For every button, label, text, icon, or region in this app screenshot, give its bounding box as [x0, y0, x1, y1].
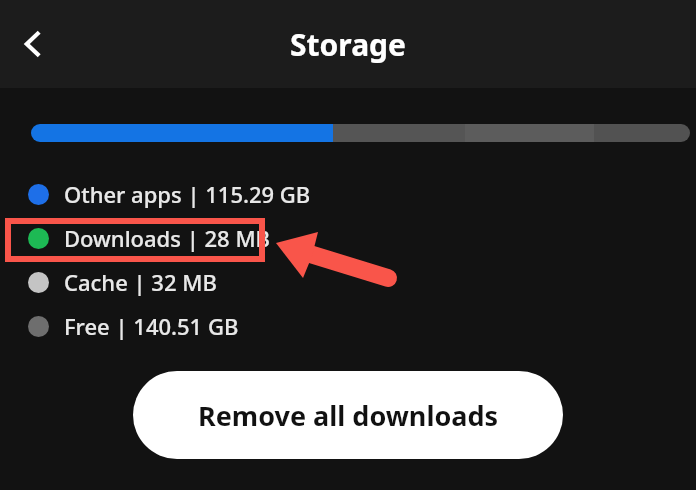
staticText: Downloads | 28 MB: [64, 223, 270, 253]
staticText: Cache | 32 MB: [64, 267, 217, 297]
button[interactable]: Cache | 32 MB: [0, 260, 696, 304]
staticText: Other apps | 115.29 GB: [64, 179, 311, 209]
button[interactable]: Back: [6, 17, 60, 71]
button[interactable]: Downloads | 28 MB: [0, 216, 696, 260]
button[interactable]: Free | 140.51 GB: [0, 304, 696, 348]
staticText: Remove all downloads: [198, 397, 499, 434]
staticText: Storage: [290, 24, 406, 65]
staticText: Free | 140.51 GB: [64, 311, 239, 341]
button[interactable]: Other apps | 115.29 GB: [0, 172, 696, 216]
button[interactable]: Remove all downloads: [133, 371, 563, 459]
